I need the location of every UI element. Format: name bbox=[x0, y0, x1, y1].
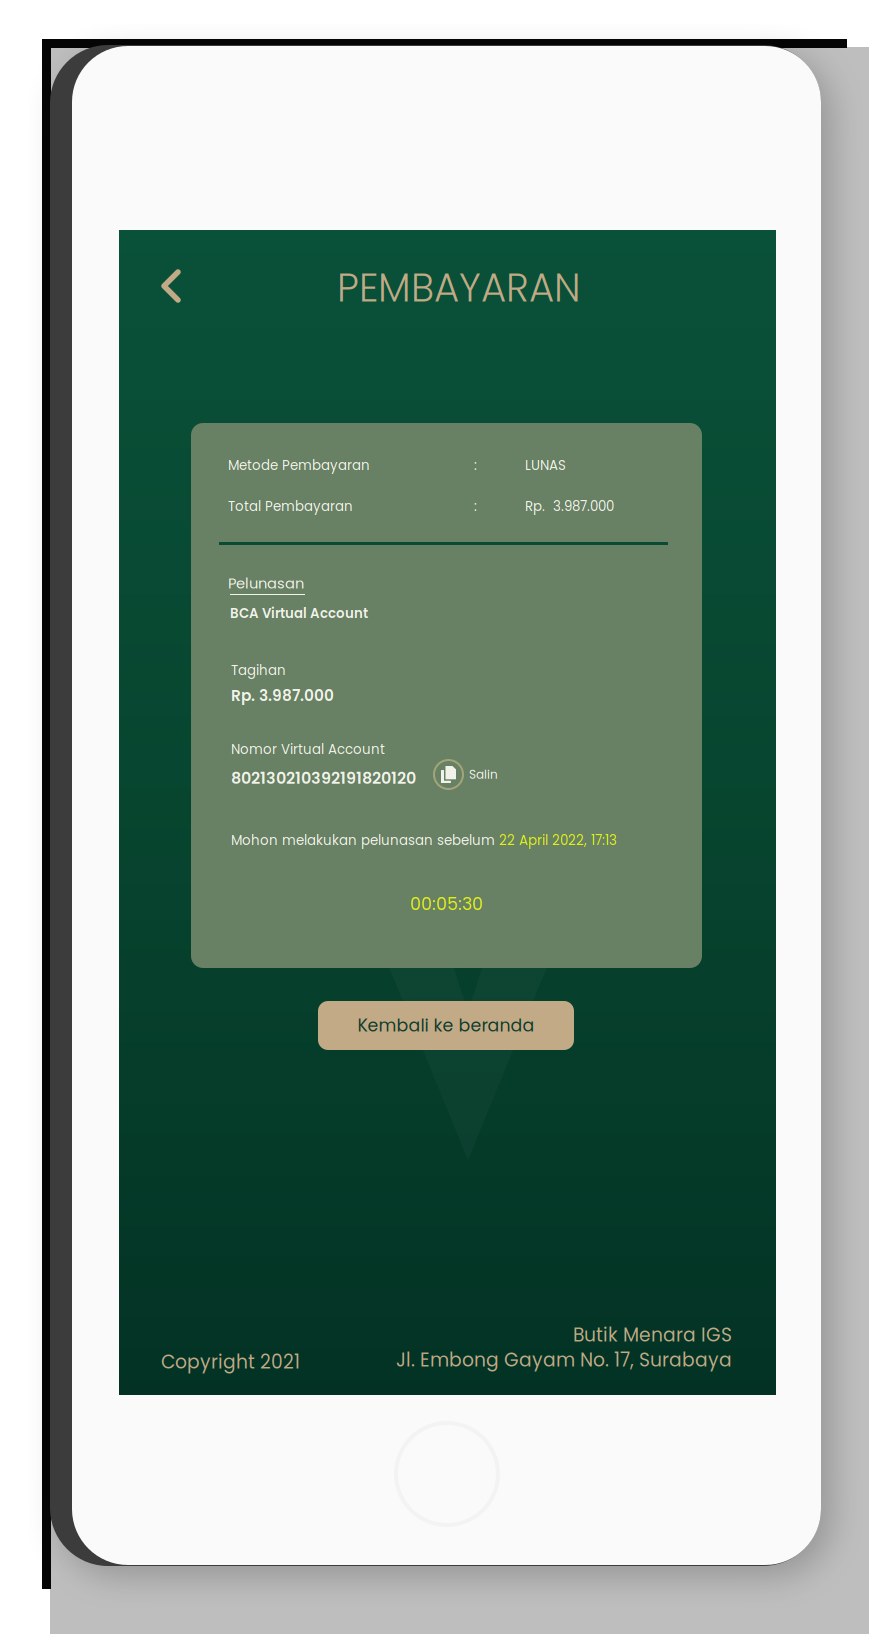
staticText: Metode Pembayaran bbox=[228, 456, 370, 475]
staticText: : bbox=[474, 456, 477, 475]
staticText: PEMBAYARAN bbox=[337, 261, 581, 315]
staticText: 00:05:30 bbox=[410, 892, 483, 916]
staticText: Copyright 2021 bbox=[161, 1349, 300, 1375]
button[interactable]: Back bbox=[150, 258, 192, 314]
staticText: Salin bbox=[469, 766, 498, 783]
staticText: Butik Menara IGS bbox=[573, 1322, 732, 1348]
staticText: Jl. Embong Gayam No. 17, Surabaya bbox=[396, 1347, 732, 1373]
button[interactable]: Kembali ke beranda bbox=[318, 1001, 574, 1050]
staticText: Tagihan bbox=[231, 661, 286, 680]
staticText: Mohon melakukan pelunasan sebelum bbox=[231, 831, 499, 850]
staticText: Rp. 3.987.000 bbox=[525, 497, 614, 516]
staticText: BCA Virtual Account bbox=[230, 604, 368, 623]
staticText: LUNAS bbox=[525, 456, 566, 475]
staticText: Total Pembayaran bbox=[228, 497, 353, 516]
staticText: 802130210392191820120 bbox=[231, 767, 416, 789]
button[interactable]: Salin bbox=[434, 760, 498, 789]
staticText: Nomor Virtual Account bbox=[231, 740, 385, 759]
staticText: Rp. 3.987.000 bbox=[231, 685, 334, 706]
staticText: Pelunasan bbox=[228, 573, 304, 593]
staticText: Kembali ke beranda bbox=[357, 1013, 534, 1038]
staticText: : bbox=[474, 497, 477, 516]
staticText: 22 April 2022, 17:13 bbox=[499, 831, 617, 850]
